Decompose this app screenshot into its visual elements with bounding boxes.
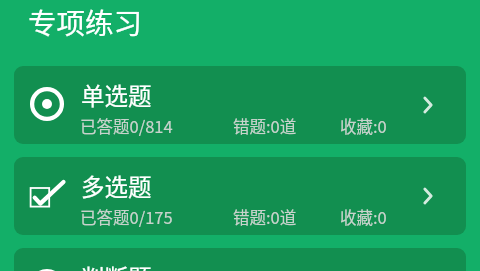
staticText: 多选题 [81,169,152,203]
button[interactable]: 多选题 [14,157,466,235]
other: Open 单选题 [420,97,436,113]
staticText: 错题:0道 [233,114,297,138]
staticText: 单选题 [81,78,152,112]
staticText: 已答题0/814 [80,114,173,138]
button[interactable]: 判断题 [14,248,466,271]
staticText: 错题:0道 [233,205,297,229]
staticText: 收藏:0 [340,205,387,229]
button[interactable]: 单选题 [14,66,466,144]
staticText: 专项练习 [28,1,143,42]
other: Open 多选题 [420,188,436,204]
staticText: 收藏:0 [340,114,387,138]
staticText: 判断题 [81,260,152,271]
staticText: 已答题0/175 [80,205,173,229]
